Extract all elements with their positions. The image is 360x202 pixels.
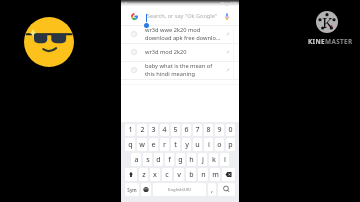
button[interactable]: m	[210, 168, 220, 181]
button[interactable]: b	[186, 168, 196, 181]
staticText: Search, or say "Ok Google"	[147, 12, 218, 20]
button[interactable]: x	[150, 168, 160, 181]
button[interactable]: 8	[204, 124, 213, 136]
button[interactable]: t	[171, 138, 180, 151]
button[interactable]: Emoji	[141, 183, 151, 196]
button[interactable]: wr3d mod 2k20	[121, 43, 239, 61]
button[interactable]: p	[226, 138, 235, 151]
staticText: o	[217, 140, 222, 150]
staticText: b	[189, 170, 194, 180]
staticText: 2	[140, 125, 145, 135]
button[interactable]: h	[187, 153, 196, 166]
staticText: n	[201, 170, 206, 180]
button[interactable]: ,	[208, 183, 216, 196]
staticText: 7	[195, 125, 200, 135]
staticText: 9	[217, 125, 222, 135]
staticText: wr3d wwe 2k20 mod	[145, 26, 201, 34]
staticText: p	[228, 140, 233, 150]
staticText: d	[156, 155, 161, 165]
button[interactable]: c	[162, 168, 172, 181]
button[interactable]: d	[154, 153, 163, 166]
button[interactable]: Voice search	[225, 13, 229, 20]
staticText: m	[212, 170, 219, 180]
button[interactable]: 4	[160, 124, 169, 136]
button[interactable]: 1	[125, 124, 135, 136]
staticText: g	[178, 155, 183, 165]
button[interactable]: v	[174, 168, 184, 181]
staticText: s	[146, 155, 150, 165]
staticText: t	[174, 140, 177, 150]
button[interactable]: j	[198, 153, 207, 166]
staticText: 6	[184, 125, 189, 135]
button[interactable]: 6	[182, 124, 191, 136]
staticText: w	[139, 140, 145, 150]
staticText: download apk free downlo…	[145, 34, 221, 42]
button[interactable]: 0	[226, 124, 235, 136]
staticText: 4	[162, 125, 167, 135]
button[interactable]: Insert suggestion	[225, 68, 230, 73]
button[interactable]: Search, or say "Ok Google"	[121, 7, 239, 25]
button[interactable]: u	[193, 138, 202, 151]
button[interactable]: Text selection handle	[144, 23, 149, 28]
button[interactable]: English(UK)	[153, 183, 206, 196]
staticText: 5	[173, 125, 178, 135]
button[interactable]: Sym	[125, 183, 139, 196]
staticText: r	[163, 140, 166, 150]
button[interactable]: o	[215, 138, 224, 151]
button[interactable]: s	[143, 153, 152, 166]
staticText: K	[322, 12, 333, 32]
staticText: ▶A	[122, 1, 128, 6]
staticText: 3	[151, 125, 156, 135]
button[interactable]: 2	[137, 124, 147, 136]
button[interactable]: y	[182, 138, 191, 151]
staticText: h	[189, 155, 194, 165]
staticText: a	[134, 155, 139, 165]
staticText: q	[128, 140, 133, 150]
button[interactable]: l	[220, 153, 229, 166]
staticText: 0	[228, 125, 233, 135]
staticText: English(UK)	[168, 187, 191, 193]
staticText: l	[224, 155, 226, 165]
staticText: x	[153, 170, 157, 180]
staticText: i	[208, 140, 210, 150]
staticText: e	[151, 140, 156, 150]
button[interactable]: k	[209, 153, 218, 166]
staticText: k	[212, 155, 216, 165]
staticText: Sym	[127, 187, 137, 193]
button[interactable]: Shift	[125, 168, 137, 181]
staticText: z	[142, 170, 146, 180]
button[interactable]: 5	[171, 124, 180, 136]
staticText: y	[185, 140, 189, 150]
button[interactable]: i	[204, 138, 213, 151]
button[interactable]: 7	[193, 124, 202, 136]
button[interactable]: q	[125, 138, 135, 151]
button[interactable]: e	[149, 138, 158, 151]
button[interactable]: f	[165, 153, 174, 166]
button[interactable]: Insert suggestion	[225, 32, 230, 37]
staticText: 4G ▮▮ 51%	[220, 1, 238, 6]
staticText: 1	[128, 125, 133, 135]
button[interactable]: Search	[218, 183, 235, 196]
button[interactable]: Backspace	[222, 168, 235, 181]
staticText: u	[195, 140, 200, 150]
staticText: j	[202, 155, 204, 165]
button[interactable]: z	[139, 168, 148, 181]
button[interactable]: Insert suggestion	[225, 50, 230, 55]
button[interactable]: r	[160, 138, 169, 151]
staticText: c	[165, 170, 169, 180]
button[interactable]: g	[176, 153, 185, 166]
staticText: v	[177, 170, 181, 180]
staticText: baby what is the mean of	[145, 62, 213, 70]
button[interactable]: w	[137, 138, 147, 151]
button[interactable]: n	[198, 168, 208, 181]
button[interactable]: 9	[215, 124, 224, 136]
staticText: MASTER	[325, 37, 353, 46]
button[interactable]: baby what is the mean of	[121, 61, 239, 79]
staticText: 8	[206, 125, 211, 135]
staticText: wr3d mod 2k20	[145, 48, 187, 56]
staticText: f	[168, 155, 171, 165]
button[interactable]: a	[131, 153, 141, 166]
button[interactable]: wr3d wwe 2k20 mod	[121, 25, 239, 43]
staticText: ,	[211, 185, 213, 195]
button[interactable]: 3	[149, 124, 158, 136]
